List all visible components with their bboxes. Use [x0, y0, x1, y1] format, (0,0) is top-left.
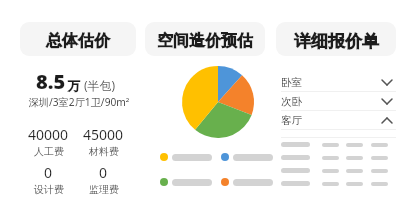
staticText: 设计费 — [34, 183, 64, 196]
button[interactable]: 卧室 — [281, 73, 396, 92]
button[interactable] — [160, 178, 212, 186]
button[interactable]: 45000 — [76, 125, 131, 158]
staticText: 0 — [99, 163, 108, 182]
button[interactable]: 总体估价 — [20, 22, 136, 56]
staticText: 客厅 — [281, 114, 302, 127]
staticText: 深圳/3室2厅1卫/90m² — [21, 95, 137, 109]
button[interactable]: 40000 — [21, 125, 76, 158]
button[interactable]: 客厅 — [281, 111, 396, 130]
button[interactable] — [160, 153, 212, 161]
staticText: 人工费 — [34, 145, 64, 158]
button[interactable]: 0 — [21, 163, 76, 196]
staticText: 总体估价 — [46, 31, 110, 51]
staticText: 8.5 — [36, 68, 66, 95]
staticText: 0 — [44, 163, 53, 182]
other: Expand 卧室 — [382, 80, 392, 85]
button[interactable]: 空间造价预估 — [145, 22, 265, 56]
other: Expand 次卧 — [382, 99, 392, 104]
button[interactable]: 详细报价单 — [276, 22, 396, 56]
button[interactable]: 0 — [76, 163, 131, 196]
staticText: 空间造价预估 — [157, 31, 253, 51]
staticText: (半包) — [84, 77, 116, 93]
staticText: 材料费 — [89, 145, 119, 158]
button[interactable]: 次卧 — [281, 92, 396, 111]
staticText: 45000 — [83, 125, 124, 144]
staticText: 次卧 — [281, 95, 302, 108]
staticText: 万 — [68, 78, 80, 93]
staticText: 40000 — [28, 125, 69, 144]
other: Collapse 客厅 — [382, 118, 392, 123]
staticText: 详细报价单 — [294, 31, 379, 52]
button[interactable] — [221, 153, 273, 161]
staticText: 卧室 — [281, 76, 302, 89]
button[interactable] — [221, 178, 273, 186]
staticText: 监理费 — [89, 183, 119, 196]
